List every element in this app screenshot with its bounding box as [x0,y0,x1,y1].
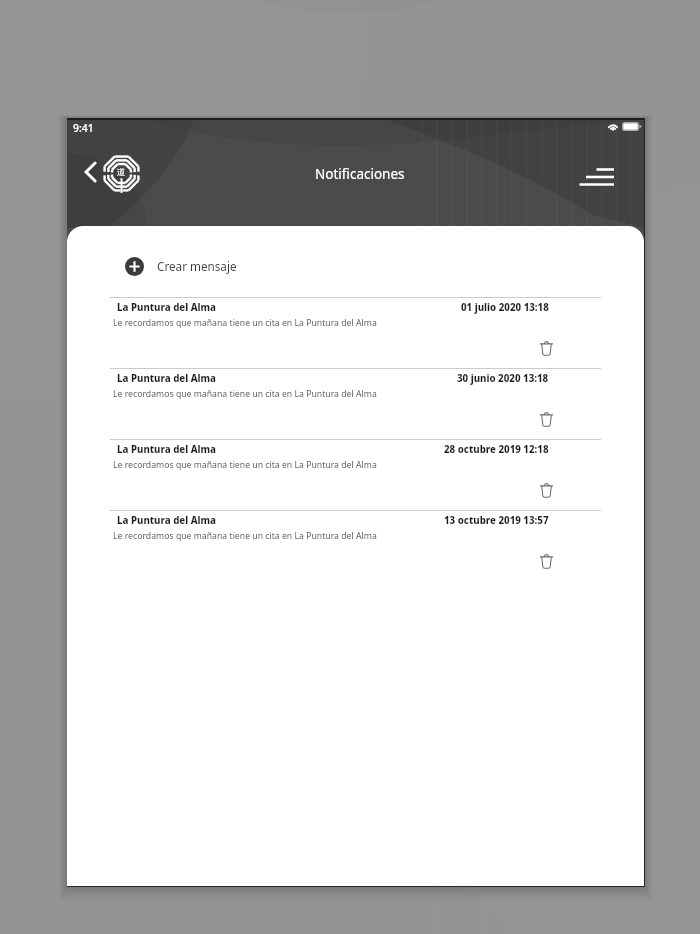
staticText: La Puntura del Alma [117,443,217,456]
button[interactable]: La Puntura del Alma [67,297,644,368]
staticText: 28 octubre 2019 12:18 [444,443,549,456]
staticText: 30 junio 2020 13:18 [457,372,549,385]
staticText: Le recordamos que mañana tiene un cita e… [113,388,377,400]
staticText: 13 octubre 2019 13:57 [444,514,549,527]
button[interactable]: La Puntura del Alma [67,510,644,581]
button[interactable]: Delete [533,335,560,362]
button[interactable]: La Puntura del Alma home [99,151,144,196]
staticText: La Puntura del Alma [117,372,217,385]
staticText: 9:41 [73,121,94,135]
staticText: Crear mensaje [157,258,237,274]
staticText: 道 [117,167,126,178]
staticText: 01 julio 2020 13:18 [461,301,549,314]
button[interactable]: Delete [533,477,560,504]
button[interactable]: Delete [533,406,560,433]
staticText: Le recordamos que mañana tiene un cita e… [113,530,377,542]
button[interactable]: La Puntura del Alma [67,439,644,510]
staticText: Le recordamos que mañana tiene un cita e… [113,317,377,329]
button[interactable]: Delete [533,548,560,575]
button[interactable]: Back [76,158,104,186]
staticText: La Puntura del Alma [117,514,217,527]
button[interactable]: Menu [573,155,619,201]
button[interactable]: Crear mensaje [117,252,245,280]
staticText: Notificaciones [315,165,405,183]
button[interactable]: La Puntura del Alma [67,368,644,439]
staticText: Le recordamos que mañana tiene un cita e… [113,459,377,471]
staticText: La Puntura del Alma [117,301,217,314]
